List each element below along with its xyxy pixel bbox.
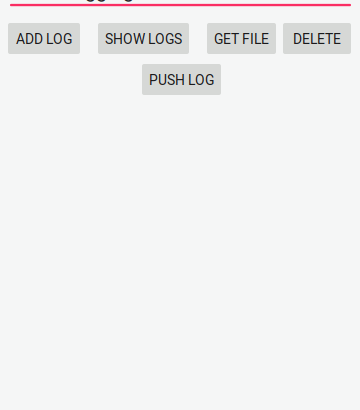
staticText: Logging [63,0,134,3]
button[interactable]: DELETE [283,23,351,54]
button[interactable]: PUSH LOG [142,64,221,95]
staticText: GET FILE [214,31,269,47]
button[interactable]: ADD LOG [8,23,80,54]
button[interactable]: SHOW LOGS [98,23,189,54]
staticText: SHOW LOGS [105,31,182,47]
staticText: PUSH LOG [149,72,214,88]
staticText: DELETE [293,31,341,47]
button[interactable]: GET FILE [207,23,276,54]
staticText: ADD LOG [16,31,72,47]
